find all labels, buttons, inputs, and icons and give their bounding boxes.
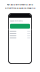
staticText: prioritize balance mobile (5, 6, 35, 9)
staticText: Pay appointments and (6, 3, 33, 6)
staticText: Appointments (10, 19, 23, 22)
